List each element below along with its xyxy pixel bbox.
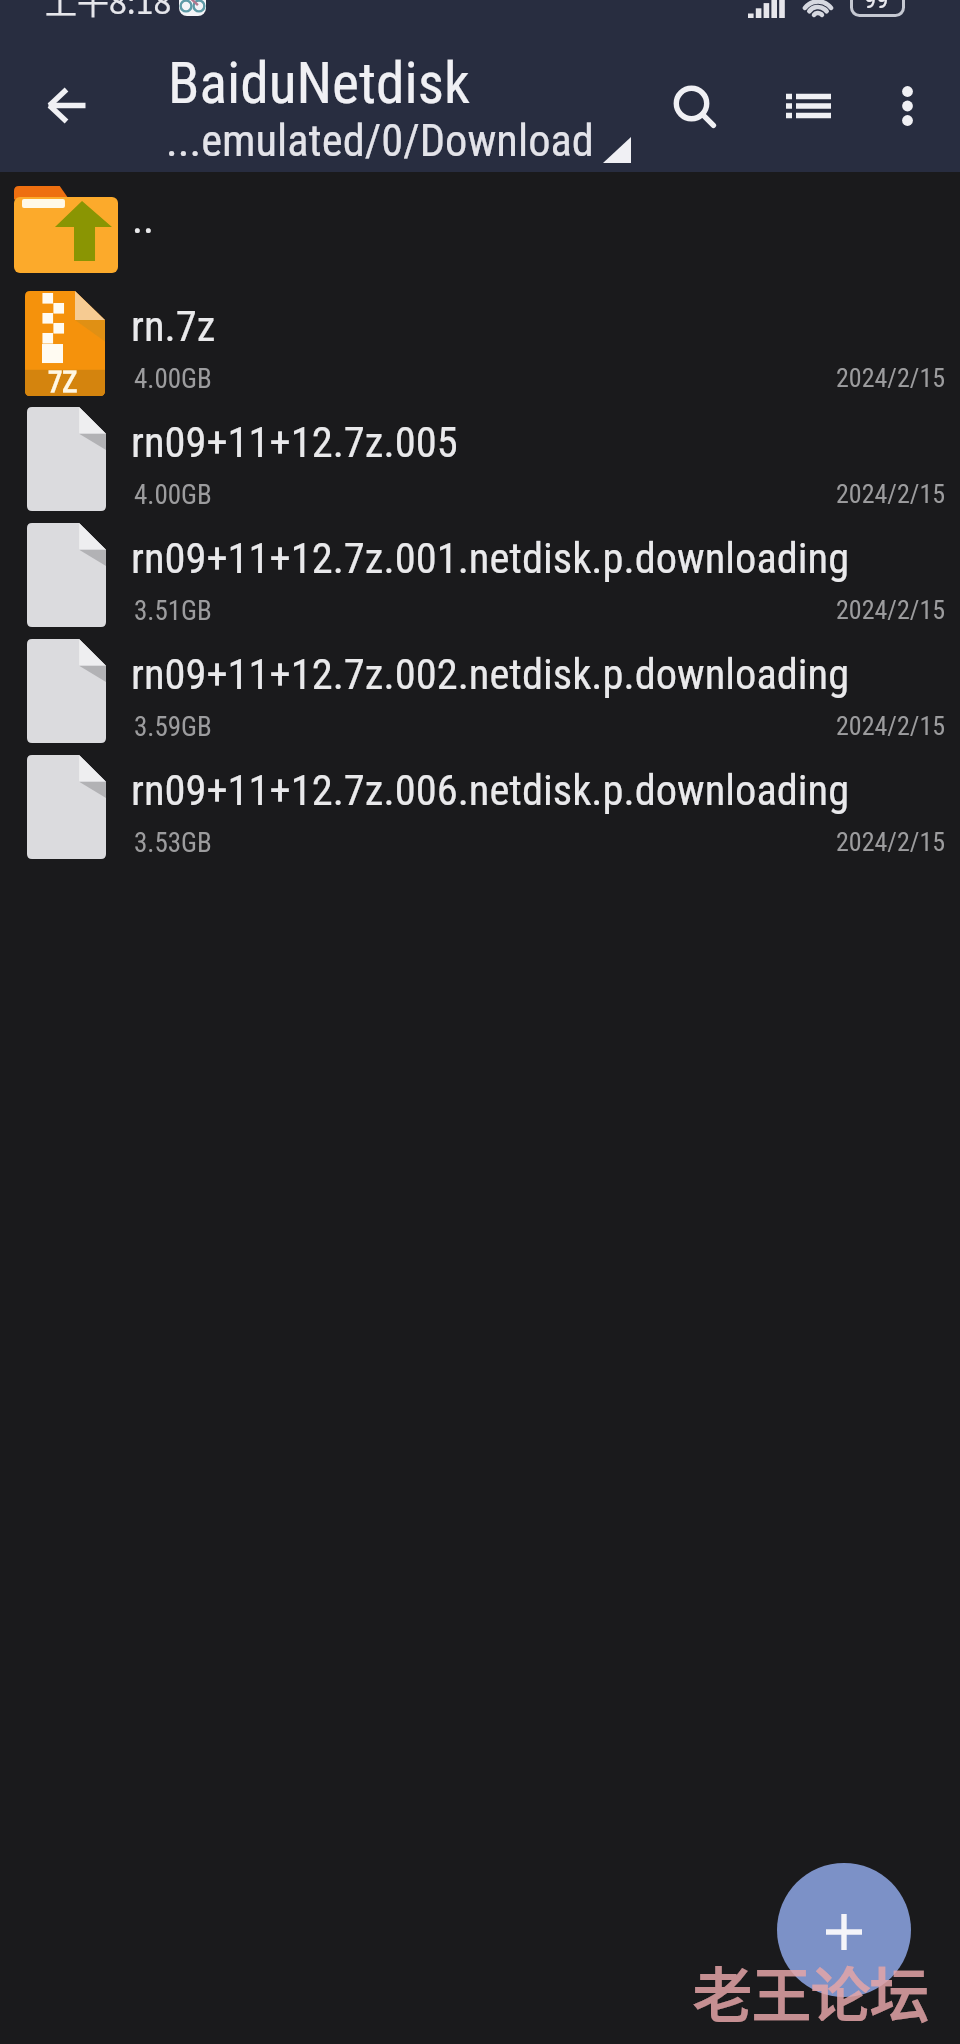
staticText: 老王论坛 [693, 1949, 930, 2034]
button[interactable]: rn09+11+12.7z.006.netdisk.p.downloading [0, 752, 960, 868]
staticText: rn09+11+12.7z.006.netdisk.p.downloading [131, 766, 850, 816]
staticText: 4.00GB [134, 479, 212, 511]
staticText: 2024/2/15 [836, 827, 946, 857]
button[interactable]: rn09+11+12.7z.002.netdisk.p.downloading [0, 636, 960, 752]
staticText: ...emulated/0/Download [166, 115, 594, 167]
staticText: rn.7z [131, 302, 216, 352]
staticText: 7Z [48, 365, 78, 399]
button[interactable]: 7Z [0, 288, 960, 404]
staticText: rn09+11+12.7z.005 [131, 418, 458, 468]
button[interactable]: rn09+11+12.7z.001.netdisk.p.downloading [0, 520, 960, 636]
staticText: rn09+11+12.7z.001.netdisk.p.downloading [131, 534, 850, 584]
staticText: BaiduNetdisk [168, 50, 470, 117]
staticText: 2024/2/15 [836, 479, 946, 509]
button[interactable]: More options [864, 61, 952, 149]
staticText: 2024/2/15 [836, 595, 946, 625]
staticText: 99 [864, 0, 889, 14]
staticText: rn09+11+12.7z.002.netdisk.p.downloading [131, 650, 850, 700]
button[interactable]: Add [777, 1863, 911, 1997]
staticText: .. [132, 194, 155, 243]
staticText: 4.00GB [134, 363, 212, 395]
staticText: 3.53GB [134, 827, 212, 859]
button[interactable]: List view [764, 61, 852, 149]
button[interactable]: rn09+11+12.7z.005 [0, 404, 960, 520]
staticText: 3.51GB [134, 595, 212, 627]
button[interactable]: Back [22, 61, 110, 149]
staticText: 3.59GB [134, 711, 212, 743]
staticText: 上午8:18 [45, 0, 172, 23]
staticText: 2024/2/15 [836, 363, 946, 393]
button[interactable]: Search [650, 61, 738, 149]
staticText: 2024/2/15 [836, 711, 946, 741]
button[interactable]: .. [0, 172, 960, 288]
